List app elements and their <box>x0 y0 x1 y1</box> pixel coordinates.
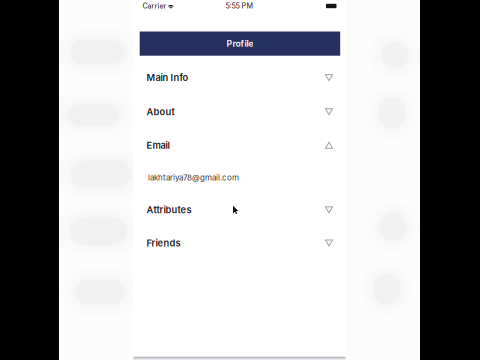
button[interactable]: Friends <box>133 226 345 260</box>
staticText: Attributes <box>146 204 191 215</box>
button[interactable]: Email <box>133 129 345 162</box>
staticText: Profile <box>226 38 253 49</box>
button[interactable]: Attributes <box>133 193 345 226</box>
button[interactable]: About <box>133 95 345 129</box>
staticText: Email <box>146 140 169 151</box>
staticText: 5:55 PM <box>225 2 253 10</box>
button[interactable]: Main Info <box>133 60 345 95</box>
staticText: Main Info <box>146 72 188 83</box>
button[interactable]: Profile <box>140 31 340 56</box>
staticText: Friends <box>146 237 180 249</box>
staticText: Carrier <box>142 2 166 10</box>
staticText: lakhtariya78@gmail.com <box>148 173 239 182</box>
staticText: About <box>146 106 174 117</box>
